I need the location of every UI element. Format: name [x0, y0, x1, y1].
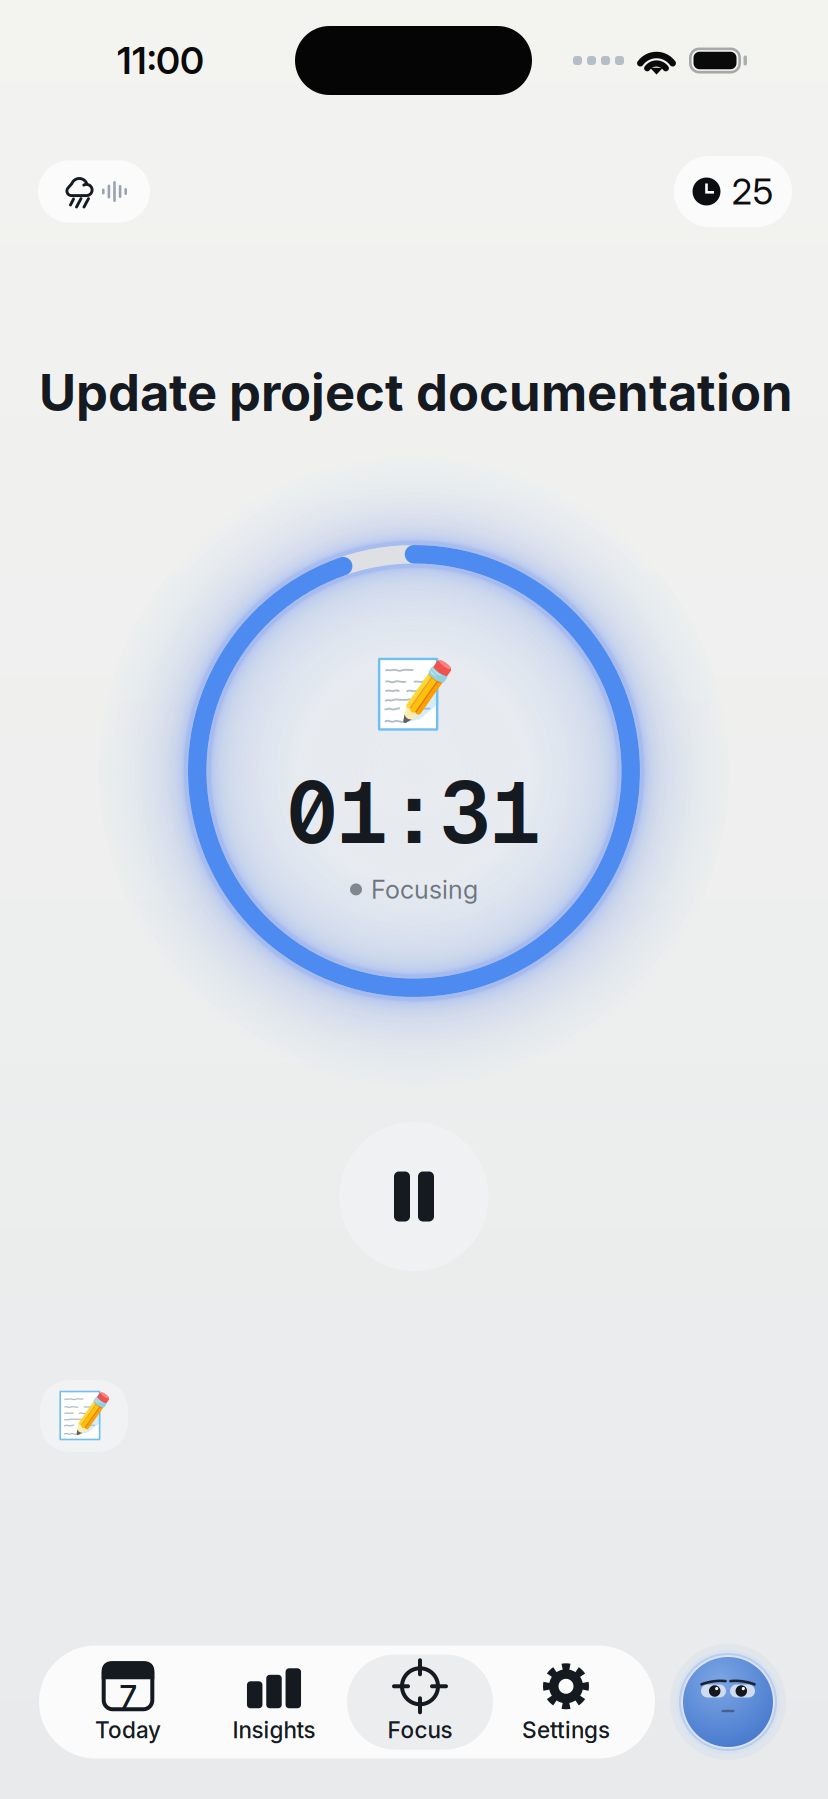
button[interactable]: Focus	[347, 1654, 493, 1749]
button[interactable]: Pause	[339, 1122, 488, 1271]
staticText: 11:00	[117, 38, 204, 83]
button[interactable]: Settings	[493, 1654, 639, 1749]
button[interactable]: Session length 25 minutes	[674, 156, 792, 227]
button[interactable]: Ambient sound: rain	[38, 160, 150, 222]
staticText: 📝	[56, 1390, 112, 1442]
staticText: Insights	[232, 1716, 315, 1744]
button[interactable]: Assistant	[670, 1644, 786, 1760]
staticText: 📝	[372, 656, 455, 732]
staticText: Today	[95, 1716, 161, 1744]
staticText: Update project documentation	[39, 362, 793, 423]
button[interactable]: Task note	[40, 1380, 128, 1452]
staticText: Focus	[387, 1716, 452, 1744]
button[interactable]: 7	[55, 1654, 201, 1749]
staticText: 25	[731, 170, 773, 213]
staticText: 01:31	[286, 757, 541, 868]
button[interactable]: Insights	[201, 1654, 347, 1749]
staticText: 7	[119, 1677, 136, 1716]
staticText: Settings	[522, 1716, 610, 1744]
staticText: Focusing	[371, 874, 478, 905]
